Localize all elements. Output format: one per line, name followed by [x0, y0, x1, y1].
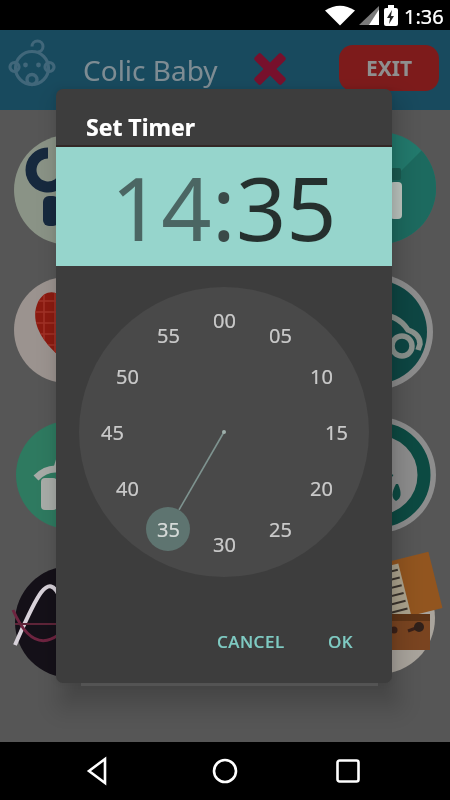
- button[interactable]: 00: [202, 307, 246, 333]
- button[interactable]: [77, 751, 117, 791]
- button[interactable]: 35: [146, 516, 190, 542]
- staticText: 50: [116, 363, 139, 389]
- button[interactable]: EXIT: [339, 45, 439, 91]
- button[interactable]: 10: [299, 363, 343, 389]
- staticText: 30: [213, 531, 236, 557]
- staticText: 05: [269, 322, 292, 348]
- button[interactable]: 55: [146, 322, 190, 348]
- button[interactable]: [328, 751, 368, 791]
- button[interactable]: [205, 751, 245, 791]
- button[interactable]: 20: [299, 475, 343, 501]
- staticText: EXIT: [366, 54, 413, 83]
- staticText: 45: [101, 419, 124, 445]
- staticText: 35: [236, 147, 337, 266]
- staticText: 25: [269, 516, 292, 542]
- staticText: CANCEL: [217, 630, 285, 653]
- staticText: :: [212, 147, 236, 266]
- button[interactable]: OK: [311, 625, 371, 657]
- staticText: 55: [157, 322, 180, 348]
- staticText: 1:36: [404, 3, 444, 30]
- staticText: 20: [310, 475, 333, 501]
- button[interactable]: [250, 49, 290, 89]
- staticText: 15: [325, 419, 348, 445]
- button[interactable]: 40: [105, 475, 149, 501]
- staticText: Set Timer: [86, 111, 195, 142]
- staticText: 00: [213, 307, 236, 333]
- staticText: 35: [157, 516, 180, 542]
- button[interactable]: 30: [202, 531, 246, 557]
- button[interactable]: CANCEL: [206, 625, 296, 657]
- button[interactable]: 05: [258, 322, 302, 348]
- staticText: 40: [116, 475, 139, 501]
- staticText: OK: [328, 630, 354, 653]
- button[interactable]: 25: [258, 516, 302, 542]
- staticText: 10: [310, 363, 333, 389]
- button[interactable]: 45: [90, 419, 134, 445]
- staticText: 14: [111, 147, 212, 266]
- button[interactable]: 50: [105, 363, 149, 389]
- button[interactable]: 15: [314, 419, 358, 445]
- staticText: Colic Baby: [83, 51, 218, 89]
